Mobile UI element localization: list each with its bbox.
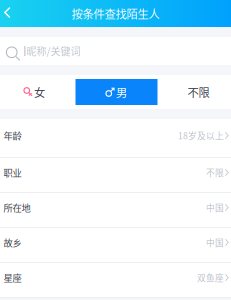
staticText: 中国 <box>206 236 224 249</box>
staticText: 中国 <box>206 201 224 214</box>
staticText: 所在地 <box>4 201 31 214</box>
staticText: 职业 <box>4 166 22 179</box>
button[interactable]: 所在地 <box>0 193 231 228</box>
staticText: 星座 <box>4 271 22 284</box>
button[interactable]: 职业 <box>0 158 231 193</box>
staticText: 男 <box>116 84 127 100</box>
button[interactable]: 星座 <box>0 263 231 298</box>
button[interactable]: 女 <box>0 79 75 105</box>
button[interactable]: 不限 <box>157 79 231 105</box>
button[interactable]: 男 <box>75 79 157 105</box>
button[interactable]: 年龄 <box>0 119 231 158</box>
button[interactable]: Back <box>0 0 26 27</box>
staticText: 不限 <box>187 84 209 100</box>
staticText: 不限 <box>206 166 224 179</box>
staticText: 昵称/关键词 <box>26 44 80 58</box>
staticText: 故乡 <box>4 236 22 249</box>
staticText: 年龄 <box>4 129 22 142</box>
staticText: 18岁及以上 <box>178 129 224 142</box>
staticText: 双鱼座 <box>197 271 224 284</box>
staticText: 按条件查找陌生人 <box>71 5 159 22</box>
button[interactable]: 故乡 <box>0 228 231 263</box>
staticText: 女 <box>34 84 45 100</box>
